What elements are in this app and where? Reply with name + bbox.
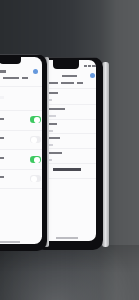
button[interactable] (38, 60, 53, 62)
button[interactable] (30, 156, 41, 163)
button[interactable] (38, 104, 96, 120)
button[interactable] (38, 88, 96, 104)
button[interactable] (38, 148, 96, 163)
button[interactable] (0, 110, 42, 130)
button[interactable]: Refresh (33, 69, 38, 74)
button[interactable] (0, 130, 42, 150)
button[interactable] (38, 119, 96, 133)
button[interactable] (30, 116, 41, 123)
button[interactable] (0, 149, 42, 169)
button[interactable] (38, 60, 51, 62)
button[interactable] (38, 60, 66, 63)
button[interactable] (30, 136, 41, 143)
button[interactable]: Refresh (90, 73, 95, 78)
button[interactable] (38, 133, 96, 148)
button[interactable] (38, 60, 49, 62)
button[interactable] (38, 60, 44, 62)
button[interactable] (0, 169, 42, 189)
button[interactable] (30, 175, 41, 182)
